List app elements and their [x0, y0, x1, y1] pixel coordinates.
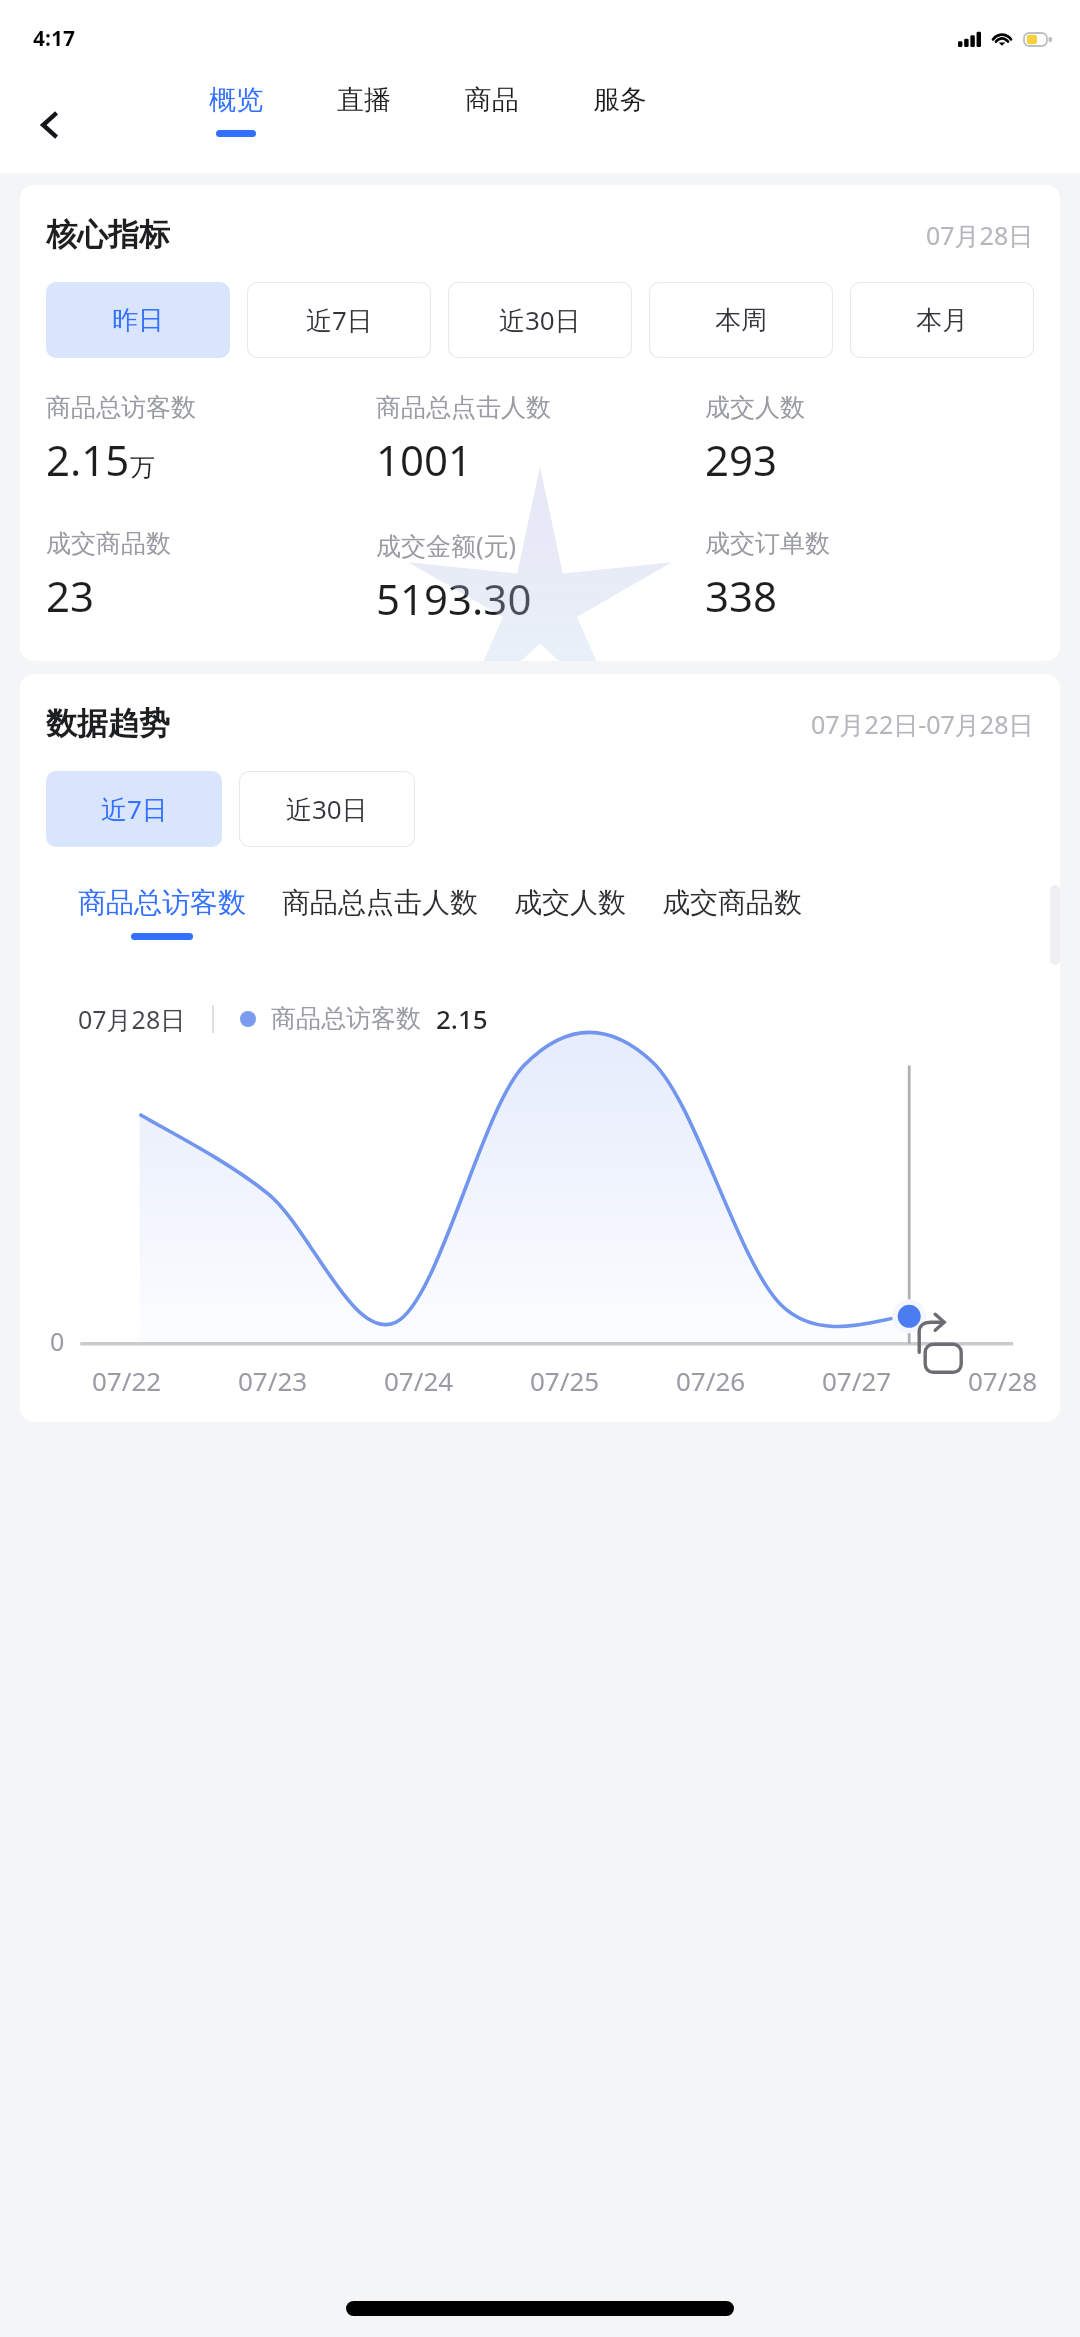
button[interactable]: 近30日 — [448, 282, 632, 358]
staticText: 成交人数 — [705, 392, 805, 423]
staticText: 07月28日 — [926, 218, 1034, 252]
staticText: 本月 — [916, 304, 968, 337]
staticText: 近7日 — [306, 302, 373, 338]
staticText: 07/22 — [92, 1363, 162, 1398]
staticText: 07/27 — [822, 1363, 892, 1398]
staticText: 07/25 — [530, 1363, 600, 1398]
staticText: 07/23 — [238, 1363, 308, 1398]
staticText: 1001 — [376, 431, 473, 488]
staticText: 商品总访客数 — [271, 1003, 421, 1034]
staticText: 293 — [705, 431, 778, 488]
button[interactable]: 成交商品数 — [662, 885, 802, 940]
staticText: 2.15 — [436, 1001, 488, 1036]
staticText: 概览 — [209, 83, 263, 117]
staticText: 07/28 — [968, 1363, 1038, 1398]
button[interactable]: 近7日 — [46, 771, 222, 847]
staticText: 万 — [130, 452, 155, 483]
button[interactable]: 服务 — [556, 83, 684, 173]
staticText: 商品总点击人数 — [376, 392, 551, 423]
staticText: 商品总访客数 — [78, 885, 246, 920]
staticText: 2.15 — [46, 431, 130, 488]
button[interactable]: 成交人数 — [514, 885, 626, 940]
staticText: 近30日 — [499, 302, 581, 338]
staticText: 0 — [50, 1324, 65, 1358]
staticText: 商品 — [465, 83, 519, 117]
staticText: 07月28日 — [78, 1002, 186, 1036]
staticText: 成交商品数 — [662, 885, 802, 920]
staticText: 本周 — [715, 304, 767, 337]
button[interactable]: 本周 — [649, 282, 833, 358]
staticText: 近7日 — [101, 791, 168, 827]
button[interactable]: 近7日 — [247, 282, 431, 358]
staticText: 5193.30 — [376, 570, 532, 627]
staticText: 近30日 — [286, 791, 368, 827]
staticText: 07月22日-07月28日 — [811, 707, 1034, 741]
staticText: 核心指标 — [46, 215, 170, 254]
button[interactable]: 直播 — [300, 83, 428, 173]
button[interactable]: 概览 — [172, 83, 300, 173]
button[interactable]: 近30日 — [239, 771, 415, 847]
staticText: 商品总点击人数 — [282, 885, 478, 920]
button[interactable]: 商品 — [428, 83, 556, 173]
button[interactable]: 商品总点击人数 — [282, 885, 478, 940]
staticText: 成交金额(元) — [376, 528, 517, 562]
staticText: 07/24 — [384, 1363, 454, 1398]
button[interactable]: 本月 — [850, 282, 1034, 358]
staticText: 成交商品数 — [46, 528, 171, 559]
staticText: 成交人数 — [514, 885, 626, 920]
button[interactable]: 商品总访客数 — [78, 885, 246, 940]
staticText: 338 — [705, 567, 778, 624]
staticText: 成交订单数 — [705, 528, 830, 559]
staticText: 23 — [46, 567, 95, 624]
staticText: 昨日 — [112, 304, 164, 337]
staticText: 数据趋势 — [46, 704, 170, 743]
button[interactable]: 昨日 — [46, 282, 230, 358]
staticText: 4:17 — [33, 24, 75, 53]
staticText: 07/26 — [676, 1363, 746, 1398]
button[interactable]: Back — [20, 94, 82, 156]
staticText: 服务 — [593, 83, 647, 117]
staticText: 直播 — [337, 83, 391, 117]
staticText: 商品总访客数 — [46, 392, 196, 423]
